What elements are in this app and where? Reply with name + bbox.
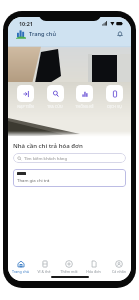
staticText: Trang chủ [12,269,29,274]
staticText: Cá nhân [112,269,126,274]
staticText: Ví & thẻ [37,269,51,274]
button[interactable]: Tìm kiếm khách hàng [13,153,126,163]
button[interactable]: Hóa đơn [81,253,106,274]
button[interactable]: Ví & thẻ [32,253,56,274]
staticText: Tìm kiếm khách hàng [24,155,68,161]
staticText: THỐNG KÊ [75,104,94,109]
staticText: TRA CỨU [47,104,63,109]
button[interactable]: Trang chủ [8,253,32,274]
button[interactable]: Thêm mới [56,253,81,274]
staticText: Trang chủ [29,30,56,38]
button[interactable]: Notifications [114,28,126,40]
staticText: Tham gia chi trả [17,177,50,183]
staticText: Thêm mới [60,269,78,274]
staticText: 10:21 [19,20,33,27]
button[interactable]: DỊCH VỤ [101,85,127,109]
button[interactable]: Cá nhân [106,253,131,274]
staticText: Nhà cần chi trả hóa đơn [13,142,83,150]
staticText: NẠP TIỀN [17,104,34,109]
button[interactable]: TRA CỨU [42,85,68,109]
button[interactable]: THỐNG KÊ [71,85,97,109]
button[interactable]: Tham gia chi trả [13,169,126,187]
staticText: Hóa đơn [86,269,101,274]
button[interactable]: NẠP TIỀN [12,85,38,109]
staticText: DỊCH VỤ [107,104,122,109]
